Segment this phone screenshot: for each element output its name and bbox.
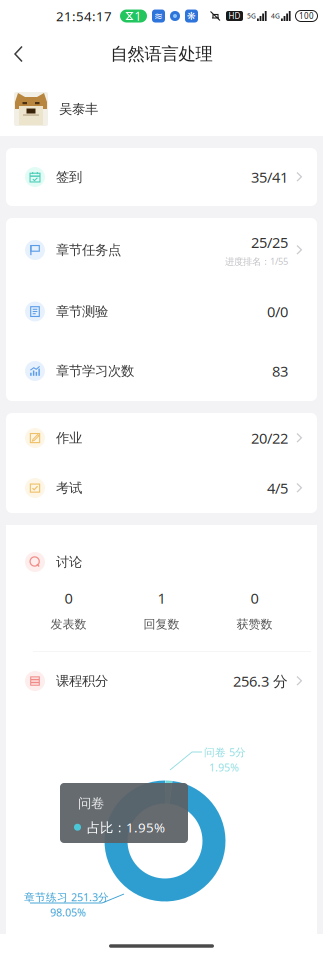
staticText: 21:54:17 — [56, 7, 112, 25]
staticText: ≋ — [154, 10, 163, 22]
button[interactable]: 课程积分 — [6, 652, 317, 710]
staticText: 问卷 5分 — [204, 745, 246, 759]
button[interactable]: 讨论 — [6, 548, 317, 576]
staticText: 20/22 — [251, 428, 288, 448]
staticText: 考试 — [56, 480, 82, 496]
staticText: 发表数 — [50, 617, 86, 632]
staticText: 回复数 — [143, 617, 179, 632]
staticText: 作业 — [56, 430, 82, 446]
staticText: 吴泰丰 — [59, 101, 98, 117]
staticText: 章节练习 251.3分 — [24, 890, 109, 904]
staticText: 章节学习次数 — [56, 363, 134, 379]
staticText: 25/25 — [251, 233, 288, 252]
staticText: 0 — [64, 588, 72, 608]
button[interactable]: 签到 — [6, 148, 317, 206]
staticText: 讨论 — [56, 554, 82, 570]
button[interactable]: 章节任务点 — [6, 218, 317, 282]
staticText: 章节任务点 — [56, 242, 121, 258]
staticText: 0/0 — [267, 302, 288, 321]
button[interactable]: Back — [0, 36, 39, 71]
staticText: 4G — [271, 12, 280, 20]
staticText: 98.05% — [50, 905, 86, 919]
staticText: 占比：1.95% — [87, 818, 165, 836]
staticText: 进度排名：1/55 — [225, 255, 288, 267]
staticText: 课程积分 — [56, 673, 108, 689]
staticText: HD — [228, 11, 240, 21]
staticText: 获赞数 — [236, 617, 272, 632]
button[interactable]: 考试 — [6, 463, 317, 513]
button[interactable]: 作业 — [6, 413, 317, 463]
staticText: ❋ — [187, 10, 196, 22]
button[interactable]: 章节测验 — [6, 282, 317, 341]
staticText: 章节测验 — [56, 303, 108, 320]
button[interactable]: 章节学习次数 — [6, 341, 317, 401]
staticText: 256.3 分 — [233, 671, 288, 691]
staticText: 1 — [157, 588, 165, 608]
staticText: 4/5 — [267, 478, 288, 498]
staticText: 5G — [247, 12, 256, 20]
staticText: 问卷 — [78, 795, 104, 811]
staticText: 100 — [299, 11, 314, 21]
staticText: 自然语言处理 — [110, 43, 212, 65]
staticText: 35/41 — [251, 167, 288, 187]
staticText: 签到 — [56, 169, 82, 185]
staticText: 0 — [250, 588, 258, 608]
staticText: 1 — [134, 8, 141, 24]
staticText: 83 — [272, 361, 288, 381]
staticText: 1.95% — [209, 760, 239, 774]
